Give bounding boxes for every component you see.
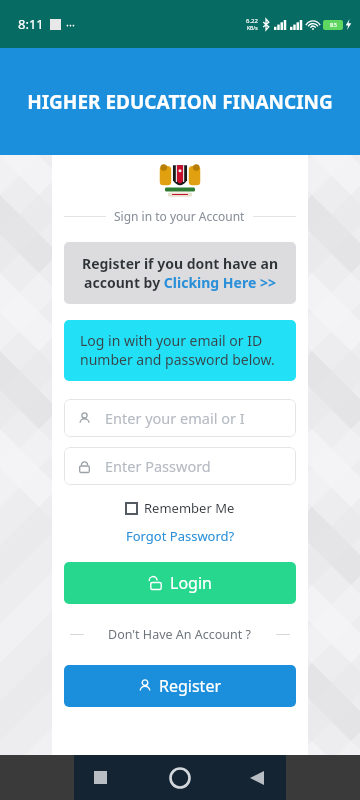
button[interactable]: Home	[169, 767, 191, 789]
staticText: 6.22	[246, 17, 258, 25]
button[interactable]: Enter Password	[64, 447, 296, 485]
button[interactable]: Enter your email or I	[64, 399, 296, 437]
button[interactable]: Register	[64, 665, 296, 707]
button[interactable]: Login	[64, 562, 296, 604]
staticText: Sign in to your Account	[114, 208, 245, 224]
staticText: Don't Have An Account ?	[108, 626, 251, 643]
staticText: Remember Me	[144, 499, 235, 517]
staticText: HIGHER EDUCATION FINANCING PORTAL	[0, 89, 360, 115]
staticText: Enter your email or I	[105, 408, 245, 428]
staticText: KB/s	[247, 25, 258, 32]
staticText: Enter Password	[105, 456, 211, 476]
staticText: Register	[159, 675, 222, 697]
staticText: 8:11	[18, 15, 44, 33]
staticText: Forgot Password?	[126, 527, 235, 545]
button[interactable]: Forgot Password?	[123, 524, 238, 548]
staticText: Login	[170, 572, 212, 594]
button[interactable]: Register if you dont have an account by …	[64, 242, 296, 304]
staticText: 85	[330, 21, 337, 29]
staticText: Log in with your email or ID number and …	[80, 331, 284, 369]
staticText: ···	[66, 17, 75, 32]
button[interactable]: Remember Me	[121, 497, 239, 519]
button[interactable]: Back	[250, 771, 264, 785]
staticText: Register if you dont have an account by …	[74, 254, 286, 292]
